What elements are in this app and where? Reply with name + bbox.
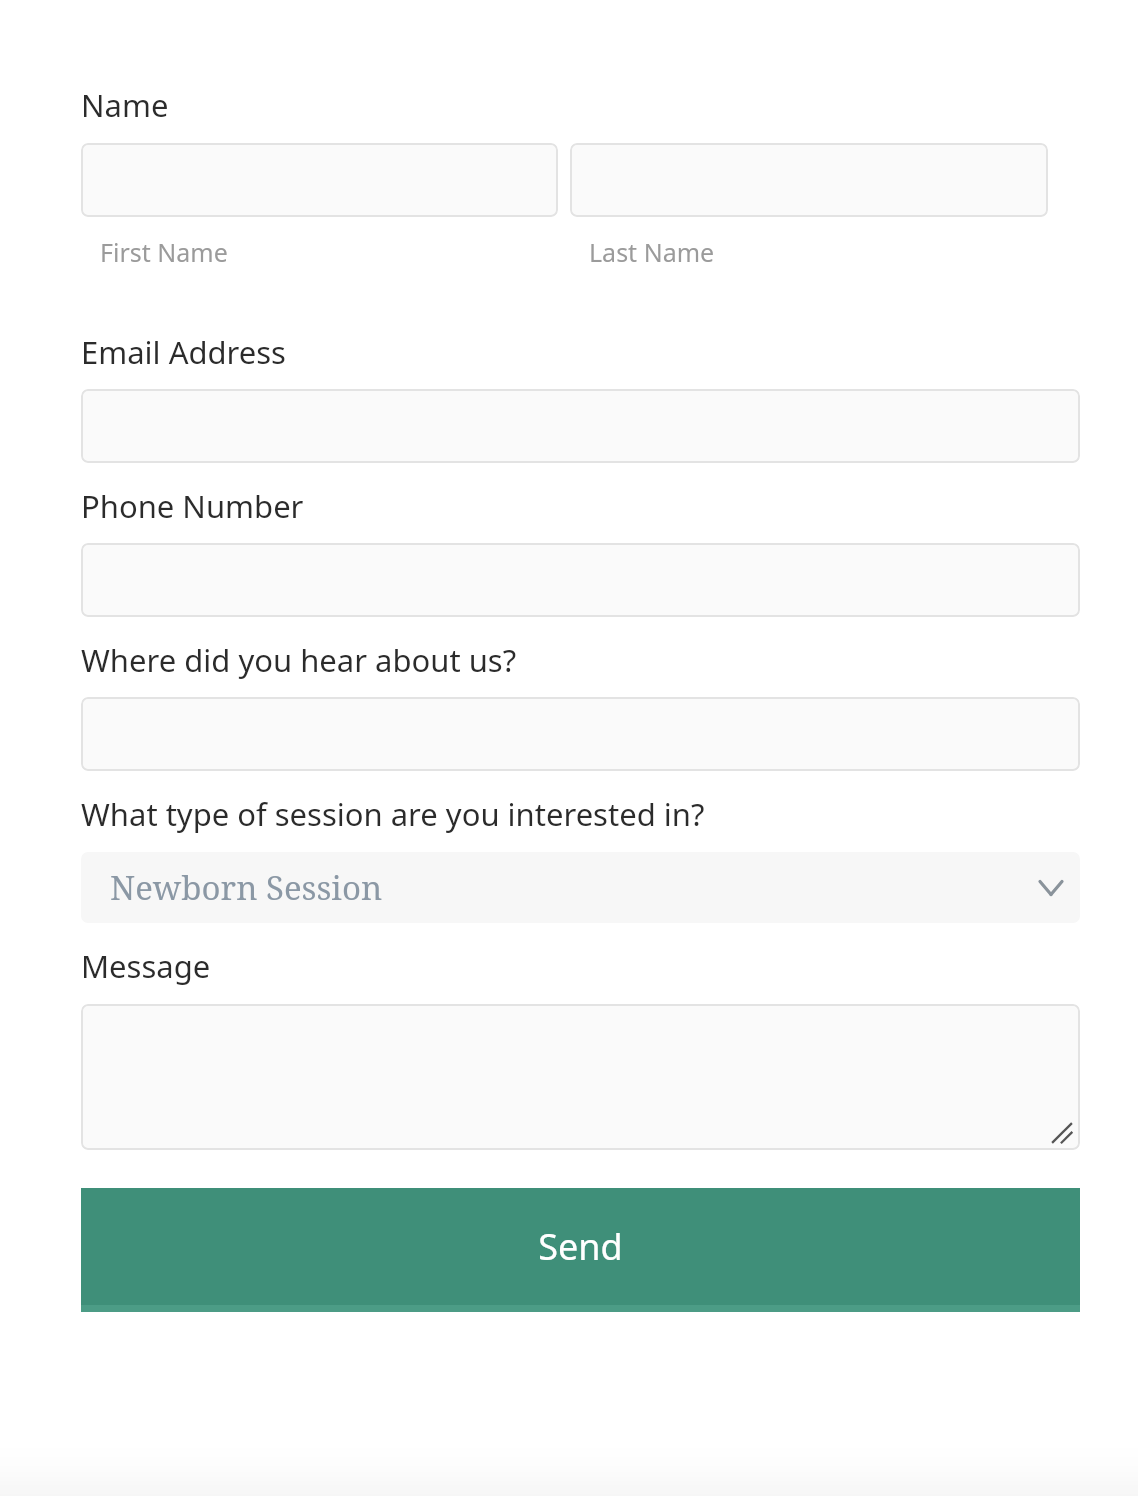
button[interactable]: Send <box>81 1188 1080 1312</box>
button[interactable]: Where did you hear about us input <box>81 697 1080 771</box>
staticText: Message <box>81 945 211 987</box>
staticText: Send <box>538 1222 623 1271</box>
button[interactable]: First Name input <box>81 143 558 217</box>
staticText: Email Address <box>81 331 286 373</box>
staticText: Where did you hear about us? <box>81 639 517 681</box>
staticText: Newborn Session <box>110 865 1034 910</box>
button[interactable]: Email Address input <box>81 389 1080 463</box>
button[interactable]: Phone Number input <box>81 543 1080 617</box>
staticText: Phone Number <box>81 485 304 527</box>
staticText: Name <box>81 84 169 126</box>
staticText: What type of session are you interested … <box>81 793 705 835</box>
button[interactable]: Last Name input <box>570 143 1048 217</box>
button[interactable]: Session type: Newborn Session <box>81 852 1080 923</box>
button[interactable]: Message input <box>81 1004 1080 1150</box>
staticText: Last Name <box>589 235 715 269</box>
staticText: First Name <box>100 235 228 269</box>
